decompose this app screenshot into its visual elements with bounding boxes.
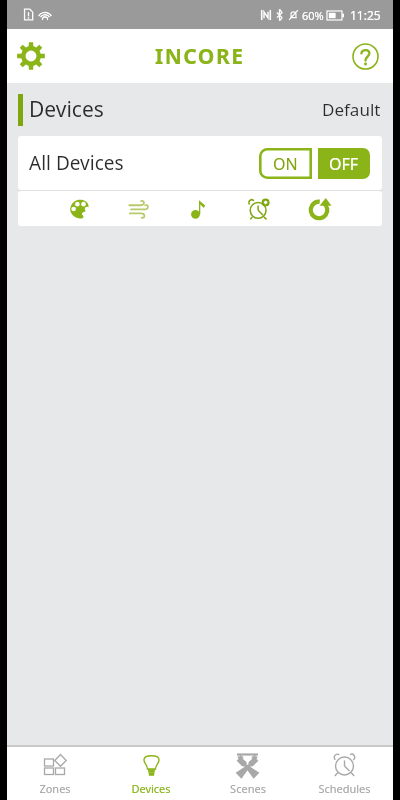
staticText: Zones [39,781,71,796]
button[interactable]: Zones [7,747,103,800]
button[interactable]: Devices [103,747,199,800]
staticText: OFF [329,153,359,175]
button[interactable]: Music [188,198,210,220]
button[interactable]: Help [343,34,387,78]
staticText: Default [322,98,381,121]
staticText: ON [273,153,298,175]
button[interactable]: Scenes [199,747,296,800]
button[interactable]: Colour [69,198,91,220]
button[interactable]: Alarm [248,198,270,220]
button[interactable]: Fan [128,198,150,220]
button[interactable]: Schedules [296,747,393,800]
staticText: Devices [131,781,171,796]
staticText: Scenes [230,781,266,796]
staticText: 60% [302,8,324,23]
staticText: Schedules [318,781,371,796]
staticText: INCORE [155,42,245,71]
staticText: 11:25 [350,7,381,23]
staticText: Devices [29,95,104,124]
button[interactable]: Settings [9,34,53,78]
button[interactable]: Refresh [308,197,332,221]
button[interactable]: ON [259,148,312,179]
button[interactable]: OFF [318,148,370,179]
staticText: All Devices [29,150,124,176]
